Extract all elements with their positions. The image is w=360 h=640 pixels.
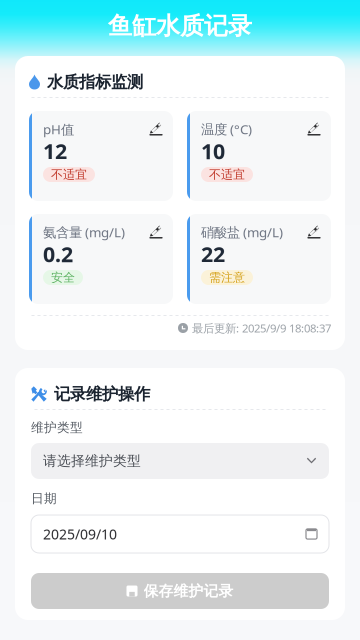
button[interactable]: 2025/09/10 [31,515,329,553]
staticText: 日期 [31,490,57,506]
staticText: 鱼缸水质记录 [108,11,252,41]
staticText: 最后更新: 2025/9/9 18:08:37 [192,320,331,336]
staticText: 22 [201,239,225,269]
staticText: 2025/09/10 [43,524,117,544]
button[interactable]: 温度 (°C) [187,111,331,201]
staticText: 水质指标监测 [47,72,143,92]
button[interactable]: 请选择维护类型 [31,443,329,479]
staticText: 保存维护记录 [143,582,233,600]
staticText: 不适宜 [51,167,87,182]
button[interactable]: 保存维护记录 [31,573,329,609]
staticText: 10 [201,136,225,166]
staticText: 请选择维护类型 [43,452,141,470]
staticText: 硝酸盐 (mg/L) [201,223,283,241]
staticText: 氨含量 (mg/L) [43,223,125,241]
staticText: 记录维护操作 [54,384,150,404]
staticText: 需注意 [209,270,245,285]
staticText: 0.2 [43,239,73,269]
staticText: 温度 (°C) [201,120,252,138]
staticText: pH值 [43,120,74,138]
button[interactable]: pH值 [29,111,173,201]
button[interactable]: 硝酸盐 (mg/L) [187,214,331,304]
staticText: 12 [43,136,67,166]
staticText: 维护类型 [31,419,83,435]
button[interactable]: 氨含量 (mg/L) [29,214,173,304]
staticText: 安全 [51,270,75,285]
staticText: 不适宜 [209,167,245,182]
